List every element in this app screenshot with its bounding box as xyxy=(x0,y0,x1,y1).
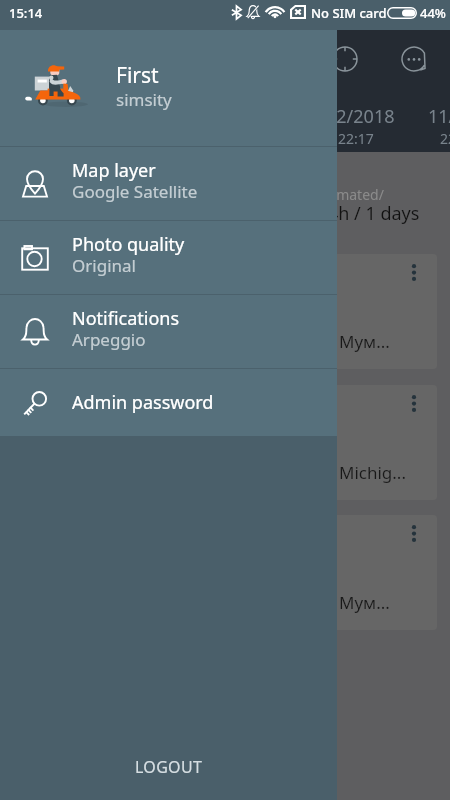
staticText: Map layer xyxy=(72,158,156,183)
staticText: Estimated/ xyxy=(313,185,384,204)
button[interactable]: Notifications xyxy=(0,295,337,368)
staticText: 15:14 xyxy=(9,4,43,22)
staticText: 22:17 xyxy=(338,129,374,148)
button[interactable]: More options xyxy=(237,254,437,369)
button[interactable]: More options xyxy=(402,261,426,285)
button[interactable]: Admin password xyxy=(0,369,337,436)
staticText: Мум... xyxy=(339,330,390,353)
staticText: Google Satellite xyxy=(72,180,198,203)
staticText: 44% xyxy=(420,4,446,22)
staticText: Notifications xyxy=(72,306,180,331)
staticText: Original xyxy=(72,254,136,277)
staticText: First xyxy=(116,61,159,90)
button[interactable]: Photo quality xyxy=(0,221,337,294)
button[interactable]: More options xyxy=(237,515,437,630)
button[interactable]: More options xyxy=(402,522,426,546)
staticText: No SIM card xyxy=(311,4,387,22)
staticText: Admin password xyxy=(72,390,214,415)
staticText: Photo quality xyxy=(72,232,185,257)
staticText: simsity xyxy=(116,88,172,111)
button[interactable]: More options xyxy=(237,385,437,500)
staticText: 11/2018 xyxy=(428,104,450,129)
button[interactable]: More options xyxy=(402,392,426,416)
staticText: Michig... xyxy=(339,461,406,484)
button[interactable]: Messages xyxy=(390,35,438,83)
staticText: 4h / 1 days xyxy=(328,201,420,226)
staticText: Мум... xyxy=(339,591,390,614)
button[interactable]: My location xyxy=(321,35,369,83)
button[interactable]: LOGOUT xyxy=(0,735,337,800)
staticText: LOGOUT xyxy=(135,756,203,778)
button[interactable]: First xyxy=(0,30,337,146)
button[interactable]: Map layer xyxy=(0,147,337,220)
staticText: 12/2018 xyxy=(326,104,395,129)
staticText: 22:17 xyxy=(440,129,450,148)
staticText: Arpeggio xyxy=(72,328,146,351)
